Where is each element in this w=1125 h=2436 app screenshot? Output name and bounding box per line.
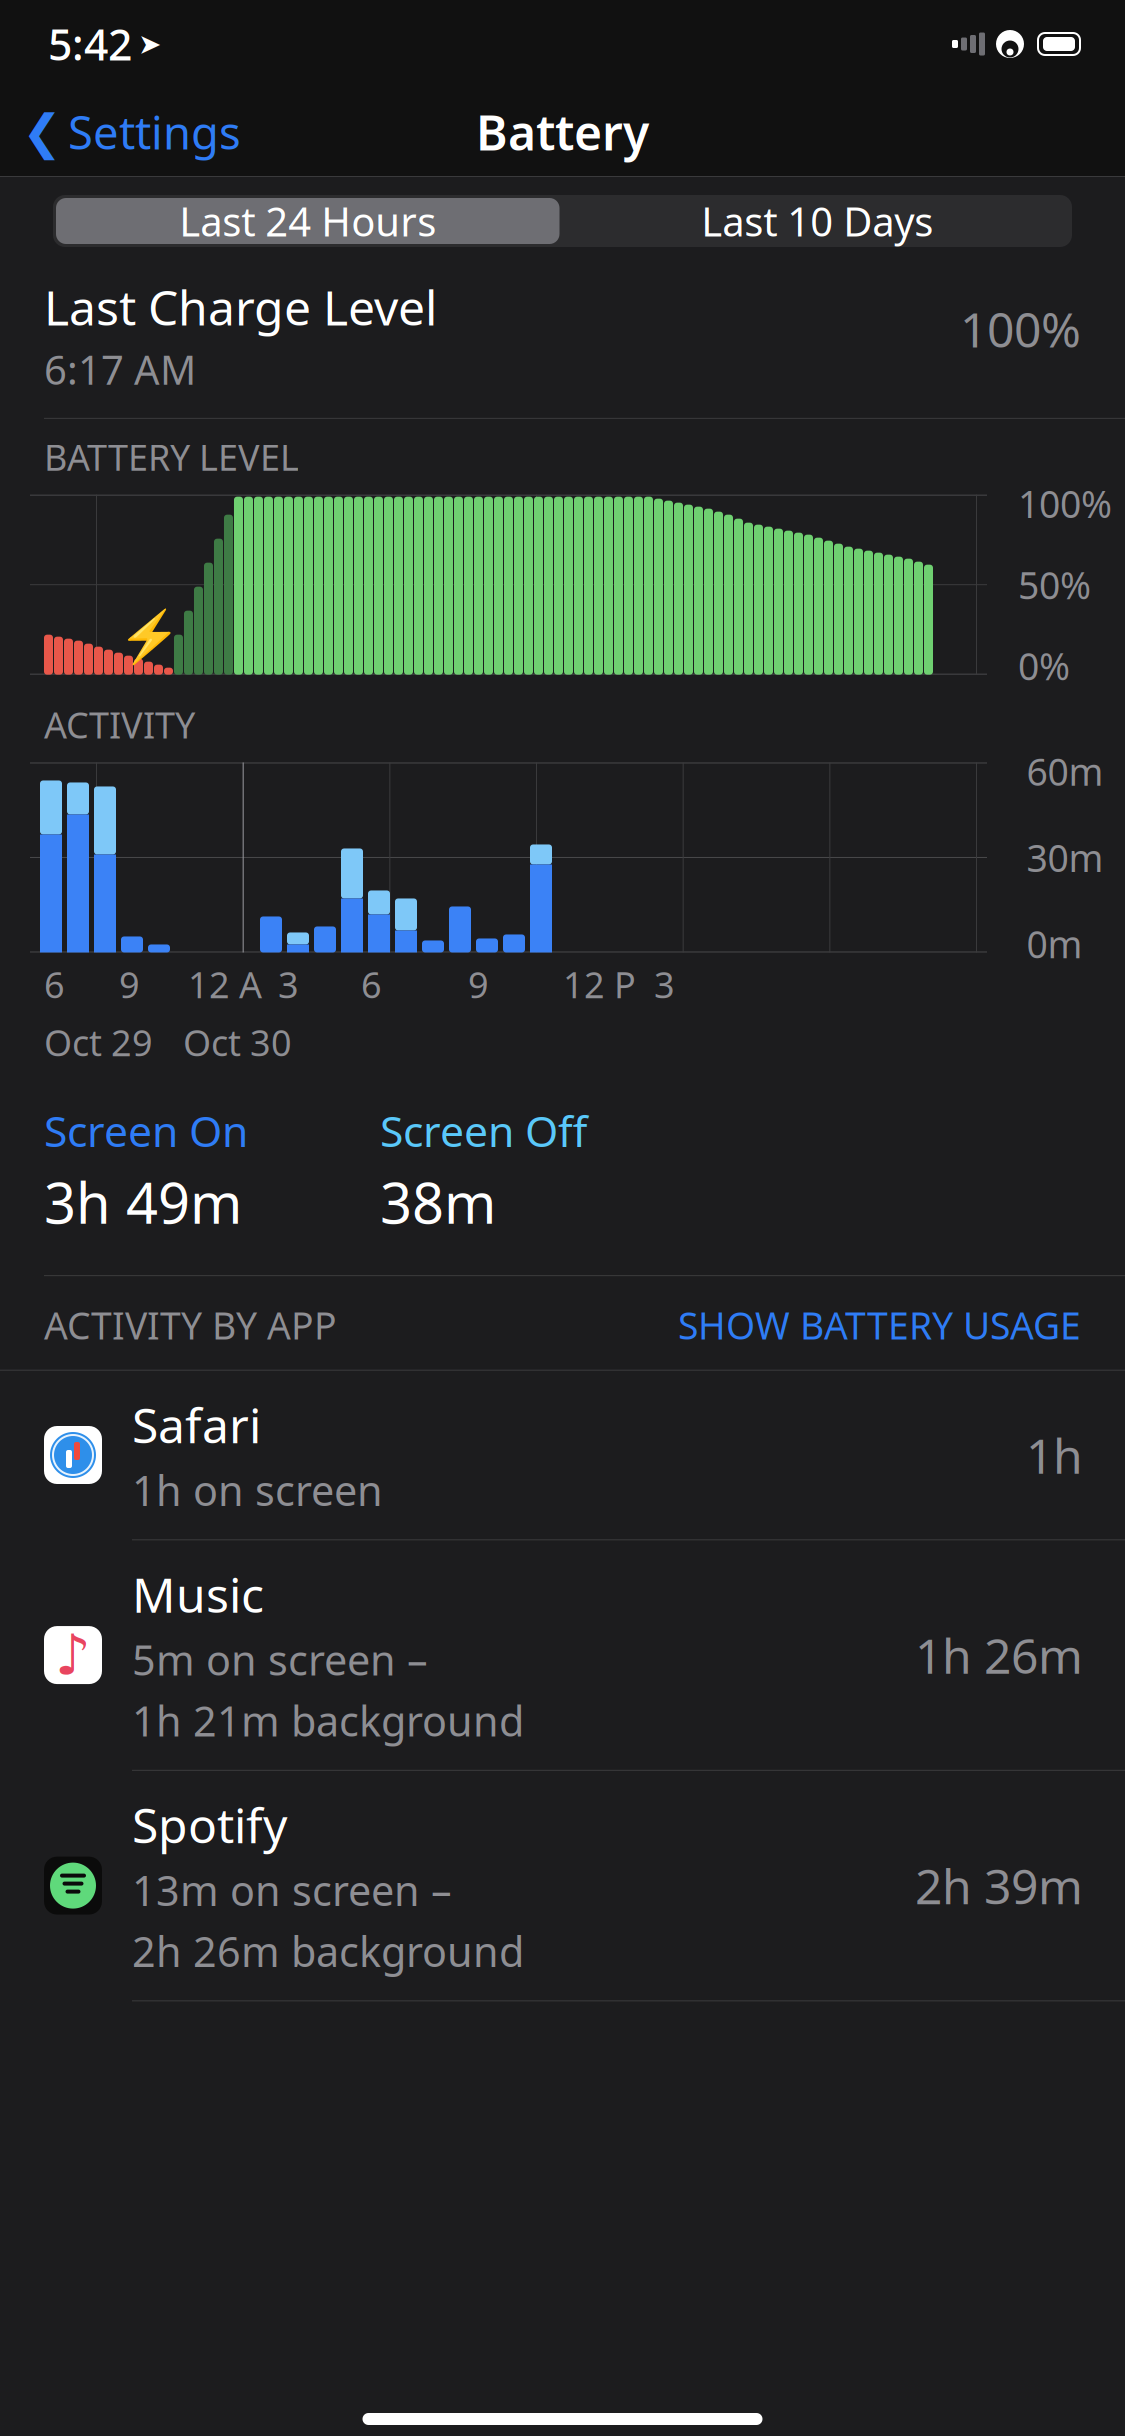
staticText: 2h 26m background xyxy=(132,1923,524,1978)
staticText: ❮ xyxy=(22,105,62,159)
staticText: 2h 39m xyxy=(915,1854,1083,1917)
staticText: 1h 21m background xyxy=(132,1693,524,1748)
staticText: 6 xyxy=(44,960,65,1008)
staticText: Battery xyxy=(476,100,649,164)
staticText: 0m xyxy=(1026,919,1082,968)
staticText: 38m xyxy=(380,1165,496,1239)
staticText: Safari xyxy=(132,1393,261,1456)
staticText: 50% xyxy=(1018,560,1091,609)
staticText: Last 10 Days xyxy=(701,194,933,247)
staticText: 100% xyxy=(1018,479,1112,528)
staticText: Screen On xyxy=(44,1102,248,1159)
staticText: Oct 29 xyxy=(44,1018,153,1066)
staticText: 60m xyxy=(1026,746,1103,796)
staticText: Settings xyxy=(68,102,241,162)
staticText: ♪ xyxy=(55,1623,91,1687)
staticText: ACTIVITY BY APP xyxy=(44,1300,337,1350)
staticText: 1h xyxy=(1026,1423,1083,1487)
staticText: 9 xyxy=(119,960,140,1008)
button[interactable]: Spotify xyxy=(0,1771,1125,2000)
staticText: ➤ xyxy=(138,28,161,60)
staticText: 3 xyxy=(278,960,299,1008)
button[interactable]: Safari xyxy=(0,1371,1125,1539)
staticText: Last 24 Hours xyxy=(179,194,436,247)
staticText: Spotify xyxy=(132,1793,287,1856)
staticText: Oct 30 xyxy=(183,1018,292,1066)
staticText: 13m on screen – xyxy=(132,1863,452,1917)
button[interactable]: Last 24 Hours xyxy=(53,195,562,247)
button[interactable]: Last 10 Days xyxy=(562,195,1072,247)
staticText: ⚡ xyxy=(118,608,181,666)
button[interactable]: SHOW BATTERY USAGE xyxy=(678,1300,1081,1350)
staticText: 1h on screen xyxy=(132,1462,383,1517)
staticText: 3h 49m xyxy=(44,1165,242,1239)
staticText: 3 xyxy=(654,960,675,1008)
staticText: 9 xyxy=(468,960,489,1008)
staticText: BATTERY LEVEL xyxy=(44,433,299,481)
staticText: 6:17 AM xyxy=(44,343,196,396)
staticText: 1h 26m xyxy=(915,1623,1083,1687)
staticText: 12 P xyxy=(563,960,636,1008)
staticText: Last Charge Level xyxy=(44,275,437,339)
staticText: 0% xyxy=(1018,641,1070,691)
staticText: 12 A xyxy=(188,960,262,1008)
staticText: 5m on screen – xyxy=(132,1632,428,1687)
staticText: Music xyxy=(132,1562,264,1626)
staticText: ACTIVITY xyxy=(44,701,195,748)
staticText: SHOW BATTERY USAGE xyxy=(678,1300,1081,1350)
staticText: 100% xyxy=(960,297,1081,361)
staticText: 6 xyxy=(361,960,382,1008)
staticText: Screen Off xyxy=(380,1102,587,1159)
button[interactable]: ❮ xyxy=(0,94,241,170)
staticText: 30m xyxy=(1026,833,1103,882)
button[interactable]: ♪ xyxy=(0,1540,1125,1770)
staticText: 5:42 xyxy=(48,16,132,72)
